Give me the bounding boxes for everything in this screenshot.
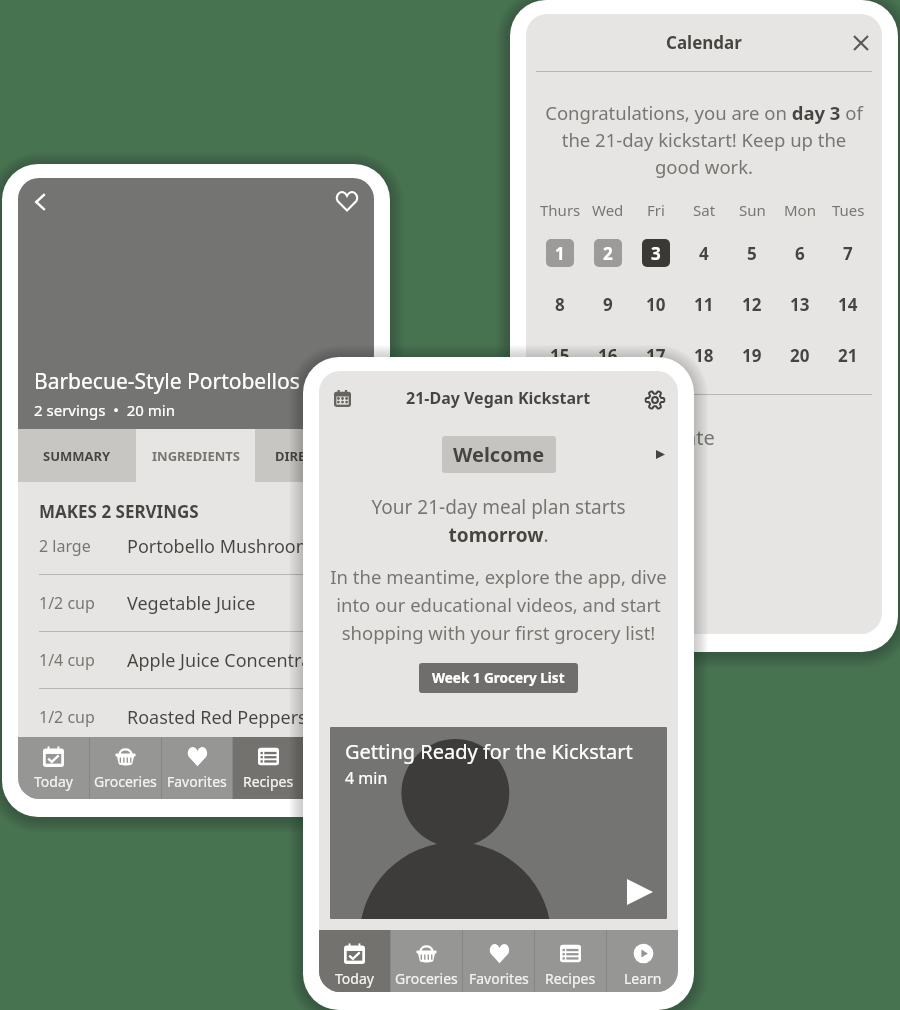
staticText: 13 <box>790 293 810 316</box>
other: Play <box>627 879 653 905</box>
button[interactable]: 6 <box>786 239 814 267</box>
staticText: Change Start Date <box>543 424 715 451</box>
staticText: Sun <box>739 200 766 220</box>
staticText: 7 <box>843 242 853 265</box>
button[interactable]: Learn <box>607 930 678 992</box>
staticText: 20 <box>790 344 810 367</box>
button[interactable]: Week 1 Grocery List <box>419 663 578 693</box>
staticText: Apple Juice Concentrate <box>127 648 328 673</box>
button[interactable]: 13 <box>786 290 814 318</box>
button[interactable]: 8 <box>546 290 574 318</box>
staticText: Groceries <box>395 969 458 988</box>
button[interactable]: Change Start Date <box>526 417 882 457</box>
staticText: 15 <box>550 344 570 367</box>
staticText: Recipes <box>545 969 596 988</box>
staticText: Favorites <box>469 969 529 988</box>
staticText: 19 <box>742 344 762 367</box>
staticText: 1/2 cup <box>39 592 95 614</box>
staticText: 21 <box>838 344 858 367</box>
staticText: 14 <box>838 293 858 316</box>
button[interactable]: 10 <box>642 290 670 318</box>
button[interactable]: Recipes <box>535 930 606 992</box>
button[interactable]: SUMMARY <box>18 429 136 482</box>
button[interactable]: Today <box>18 737 89 799</box>
staticText: 5 <box>747 242 757 265</box>
button[interactable]: Recipes <box>233 737 303 799</box>
staticText: 6 <box>795 242 805 265</box>
button[interactable]: 5 <box>738 239 766 267</box>
staticText: INGREDIENTS <box>152 447 240 465</box>
staticText: Vegetable Juice <box>127 591 256 616</box>
staticText: 21-Day Vegan Kickstart <box>406 387 591 409</box>
staticText: Learn <box>624 969 662 988</box>
button[interactable]: 19 <box>738 341 766 369</box>
button[interactable]: Groceries <box>391 930 462 992</box>
staticText: Fri <box>647 200 665 220</box>
button[interactable]: Favorites <box>162 737 232 799</box>
button[interactable]: 3 <box>642 239 670 267</box>
button[interactable]: 12 <box>738 290 766 318</box>
button[interactable]: Calendar <box>325 381 359 415</box>
button[interactable]: 16 <box>594 341 622 369</box>
staticText: 2 servings • 20 min <box>34 400 175 420</box>
staticText: Getting Ready for the Kickstart <box>345 738 633 765</box>
button[interactable]: 4 <box>690 239 718 267</box>
staticText: Sat <box>693 200 716 220</box>
button[interactable]: Groceries <box>90 737 161 799</box>
button[interactable]: 17 <box>642 341 670 369</box>
button[interactable]: 18 <box>690 341 718 369</box>
button[interactable]: 20 <box>786 341 814 369</box>
staticText: 1/2 cup <box>39 706 95 728</box>
button[interactable]: Favorites <box>463 930 534 992</box>
button[interactable]: 2 <box>594 239 622 267</box>
button[interactable]: 7 <box>834 239 862 267</box>
button[interactable]: 14 <box>834 290 862 318</box>
staticText: Portobello Mushrooms <box>127 534 322 559</box>
staticText: Wed <box>592 200 624 220</box>
button[interactable]: 9 <box>594 290 622 318</box>
staticText: In the meantime, explore the app, dive i… <box>326 564 671 645</box>
staticText: 1 <box>555 242 565 265</box>
staticText: Today <box>34 772 73 791</box>
staticText: 3 <box>651 242 661 265</box>
staticText: 4 min <box>345 767 388 789</box>
button[interactable]: Close <box>842 24 880 62</box>
staticText: 17 <box>646 344 666 367</box>
staticText: Welcome <box>453 441 545 468</box>
staticText: 1/4 cup <box>39 649 95 671</box>
staticText: 9 <box>603 293 613 316</box>
staticText: Recipes <box>243 772 294 791</box>
staticText: Tues <box>832 200 865 220</box>
staticText: Roasted Red Peppers <box>127 705 307 730</box>
staticText: DIRECTIONS <box>275 447 355 465</box>
staticText: 4 <box>699 242 709 265</box>
button[interactable]: Welcome <box>442 436 556 473</box>
staticText: Week 1 Grocery List <box>432 669 565 687</box>
button[interactable]: Getting Ready for the Kickstart <box>330 727 667 919</box>
staticText: Favorites <box>167 772 227 791</box>
staticText: 8 <box>555 293 565 316</box>
staticText: Congratulations, you are on day 3 of the… <box>536 100 872 180</box>
button[interactable]: Back <box>20 182 60 222</box>
button[interactable]: 11 <box>690 290 718 318</box>
staticText: 18 <box>694 344 714 367</box>
staticText: Mon <box>784 200 816 220</box>
button[interactable]: Today <box>319 930 390 992</box>
staticText: 2 <box>603 242 613 265</box>
button[interactable]: Favorite <box>327 181 367 221</box>
staticText: Calendar <box>666 31 742 54</box>
staticText: Barbecue-Style Portobellos <box>34 367 300 396</box>
staticText: Your 21-day meal plan starts tomorrow. <box>319 494 678 548</box>
button[interactable]: INGREDIENTS <box>136 429 255 482</box>
button[interactable]: Learn <box>304 737 374 799</box>
button[interactable]: 21 <box>834 341 862 369</box>
staticText: 10 <box>646 293 666 316</box>
button[interactable]: Settings <box>638 383 672 417</box>
button[interactable]: 1 <box>546 239 574 267</box>
staticText: Thurs <box>540 200 581 220</box>
staticText: 2 large <box>39 535 91 557</box>
button[interactable]: Next <box>656 450 665 459</box>
button[interactable]: DIRECTIONS <box>255 429 374 482</box>
staticText: Today <box>335 969 374 988</box>
button[interactable]: 15 <box>546 341 574 369</box>
